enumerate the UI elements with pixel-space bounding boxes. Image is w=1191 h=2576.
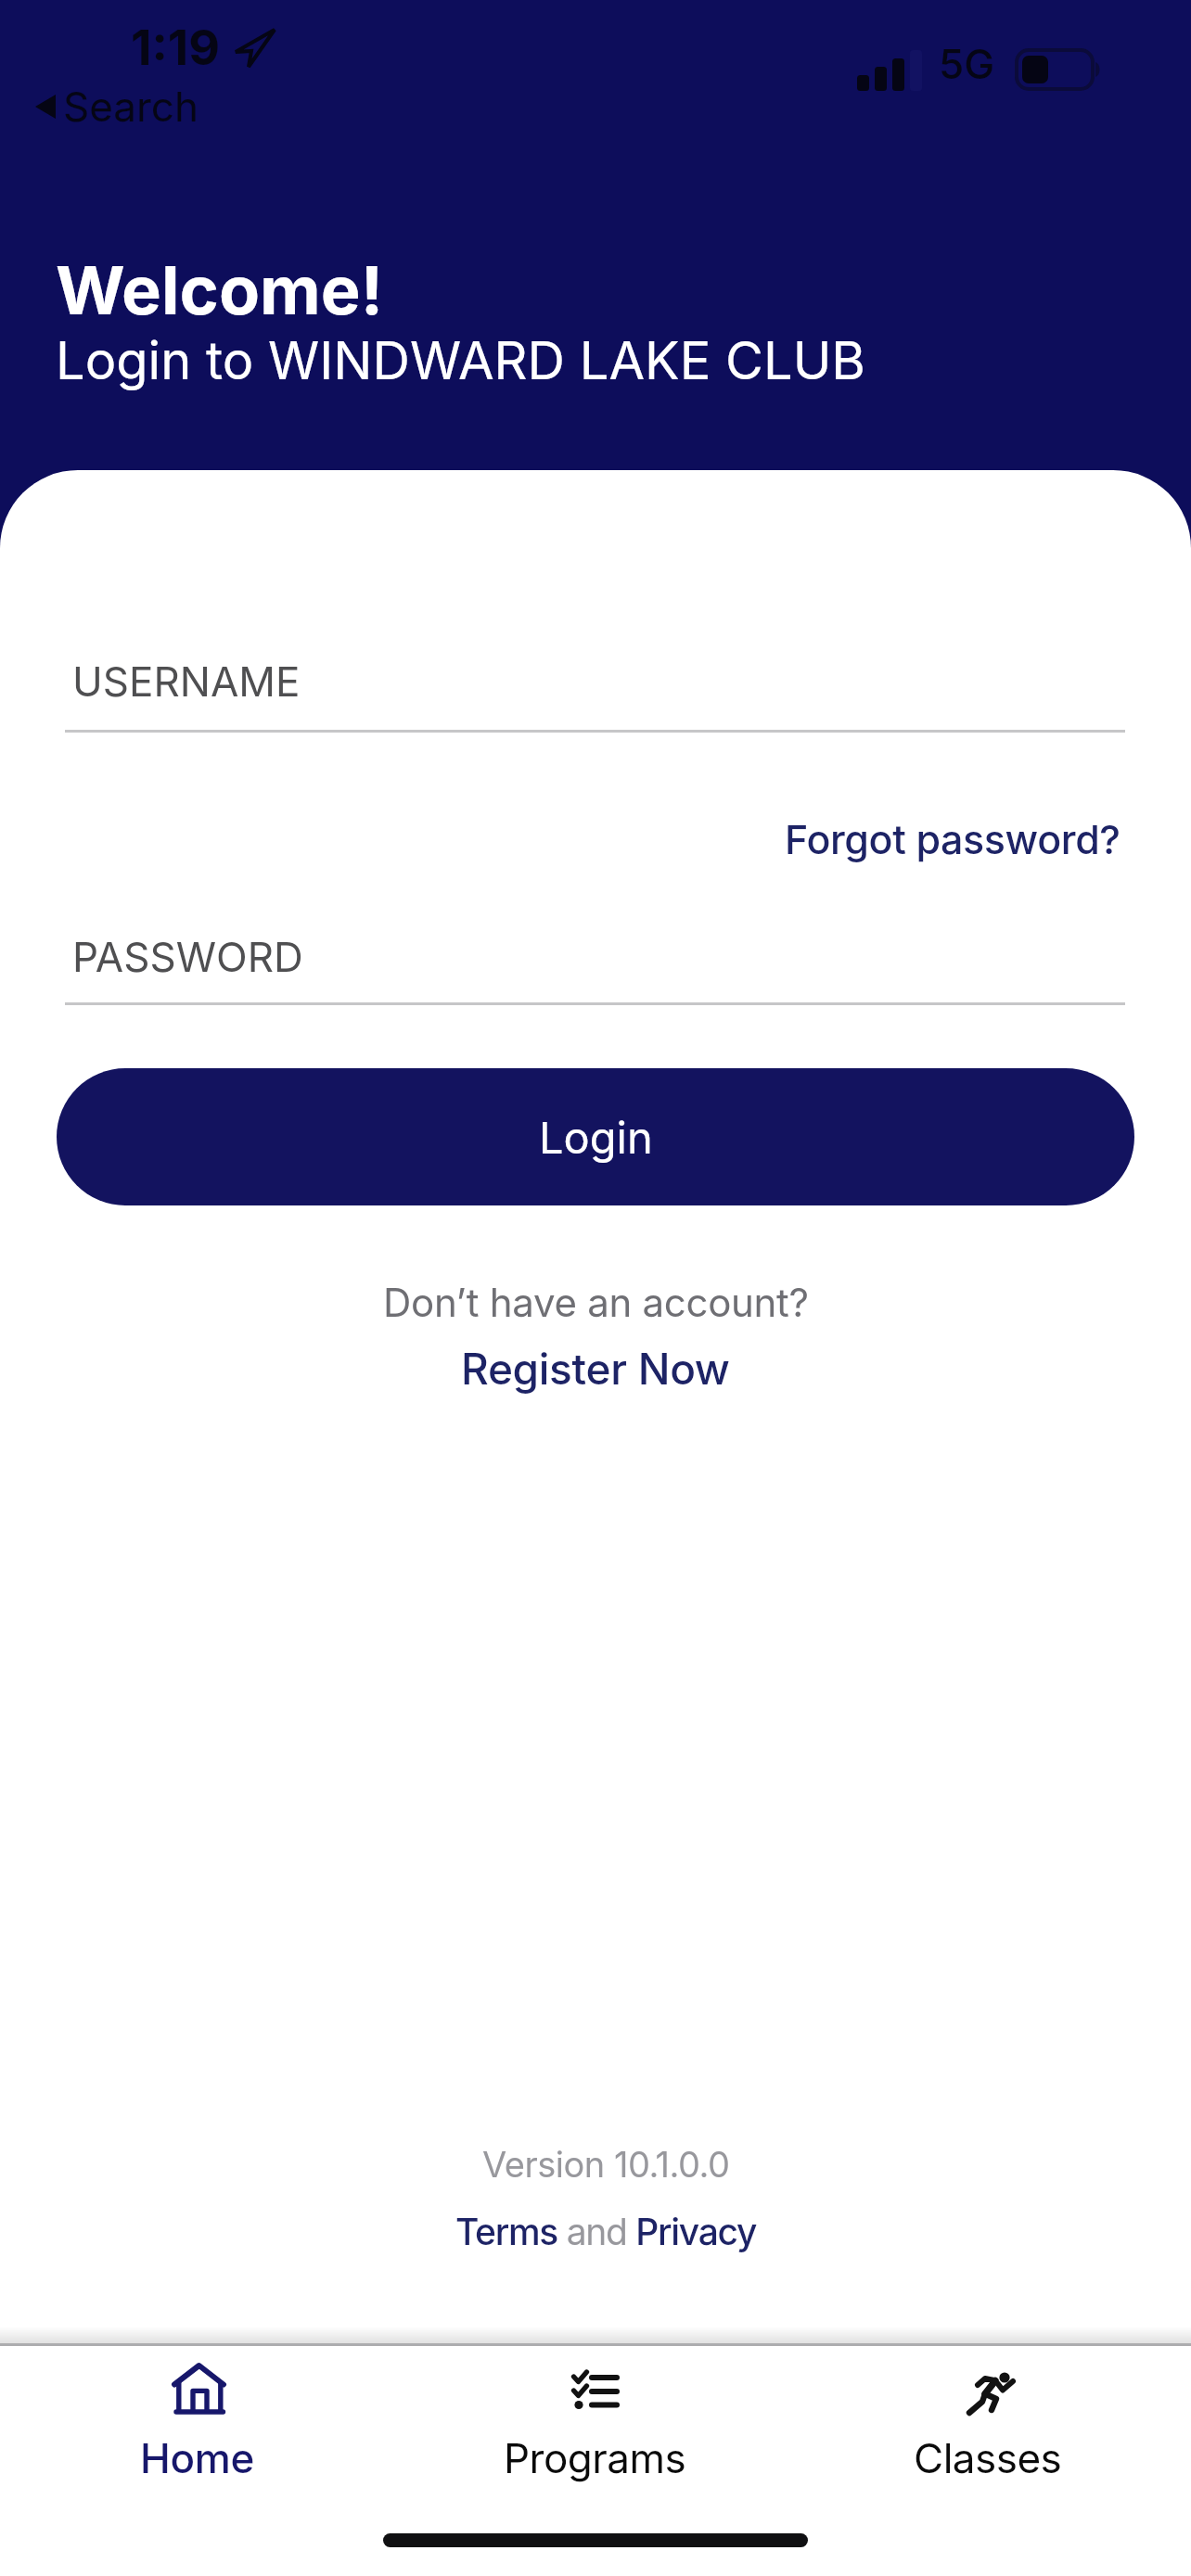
staticText: Welcome!	[56, 249, 383, 330]
staticText: Classes	[914, 2433, 1062, 2482]
staticText: 5G	[939, 39, 995, 88]
staticText: Version 10.1.0.0	[482, 2143, 730, 2186]
staticText: PASSWORD	[72, 932, 303, 981]
staticText: Don’t have an account?	[383, 1279, 809, 1326]
button[interactable]: Login	[57, 1068, 1134, 1205]
staticText: Forgot password?	[785, 815, 1121, 863]
staticText: 1:19	[131, 19, 220, 77]
button[interactable]: Terms and Privacy	[455, 2210, 757, 2253]
button[interactable]: Programs	[483, 2350, 706, 2498]
staticText: USERNAME	[72, 657, 301, 706]
staticText: Login to WINDWARD LAKE CLUB	[56, 329, 865, 392]
staticText: Login	[539, 1111, 653, 1164]
staticText: Terms and Privacy	[455, 2210, 757, 2253]
staticText: Programs	[504, 2433, 686, 2482]
staticText: Register Now	[461, 1343, 730, 1395]
button[interactable]: Home	[86, 2350, 309, 2498]
staticText: Home	[140, 2433, 255, 2482]
button[interactable]: Register Now	[461, 1343, 730, 1395]
button[interactable]: PASSWORD	[0, 932, 1191, 1025]
button[interactable]: Classes	[877, 2350, 1099, 2498]
button[interactable]: Forgot password?	[785, 815, 1121, 863]
button[interactable]: USERNAME	[0, 657, 1191, 749]
staticText: Search	[63, 82, 199, 131]
